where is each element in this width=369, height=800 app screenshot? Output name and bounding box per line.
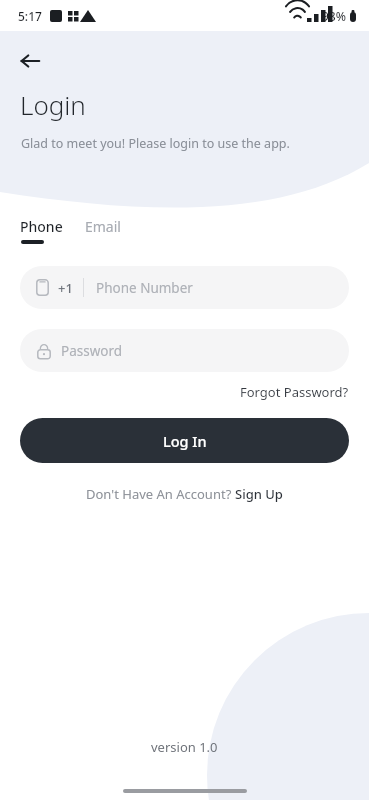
staticText: Sign Up (235, 485, 283, 503)
staticText: Email (85, 217, 121, 236)
staticText: Password (61, 342, 123, 360)
button[interactable]: Forgot Password? (240, 383, 349, 401)
staticText: Log In (163, 431, 207, 451)
button[interactable]: Email (85, 217, 121, 236)
button[interactable]: Password (20, 329, 349, 372)
staticText: Glad to meet you! Please login to use th… (21, 135, 290, 152)
button[interactable]: Phone (20, 217, 63, 244)
button[interactable]: Log In (20, 418, 349, 463)
staticText: Login (20, 87, 86, 122)
staticText: Don't Have An Account? (86, 485, 235, 503)
staticText: Forgot Password? (240, 383, 349, 401)
button[interactable]: +1 (20, 266, 349, 309)
staticText: 98% (322, 8, 346, 24)
staticText: Phone Number (96, 279, 193, 297)
staticText: +1 (58, 279, 73, 297)
staticText: Phone (20, 217, 63, 236)
button[interactable]: Back (8, 39, 52, 83)
staticText: version 1.0 (151, 738, 218, 756)
button[interactable]: Don't Have An Account? (0, 485, 369, 503)
staticText: 5:17 (18, 8, 42, 24)
